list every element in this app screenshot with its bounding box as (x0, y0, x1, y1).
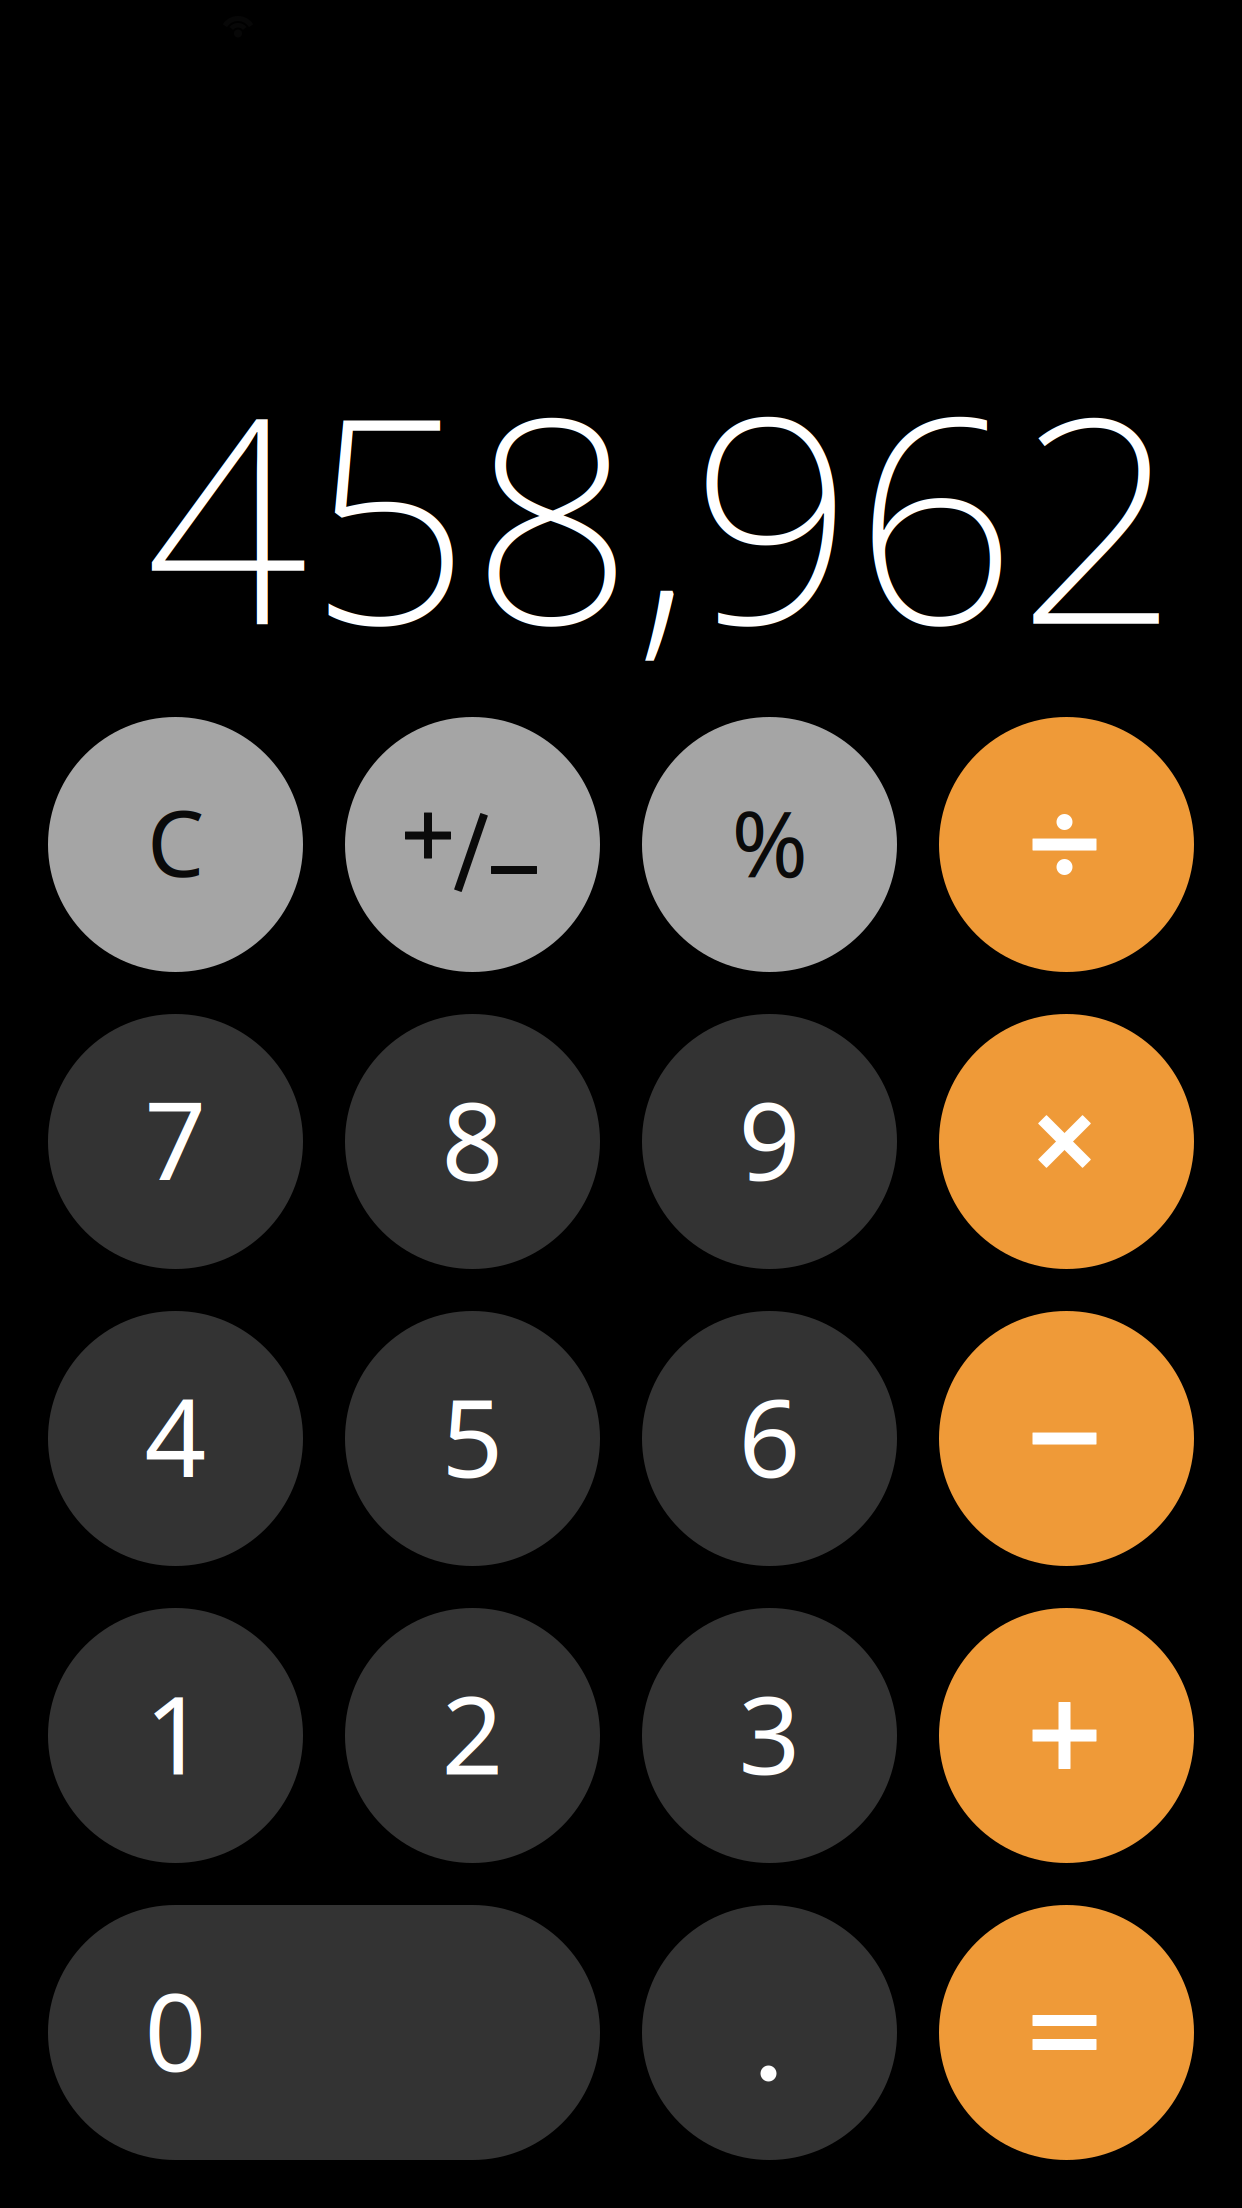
button[interactable]: Toggle sign (345, 717, 600, 972)
button[interactable]: 4 (48, 1311, 303, 1566)
staticText: C (147, 781, 204, 902)
button[interactable]: 3 (642, 1608, 897, 1863)
button[interactable]: Multiply (939, 1014, 1194, 1269)
button[interactable]: 8 (345, 1014, 600, 1269)
staticText: 6 (738, 1364, 800, 1507)
button[interactable]: Percent (642, 717, 897, 972)
button[interactable]: 7 (48, 1014, 303, 1269)
button[interactable]: 9 (642, 1014, 897, 1269)
staticText: 7 (144, 1067, 206, 1210)
button[interactable]: Decimal point (642, 1905, 897, 2160)
button[interactable]: Subtract (939, 1311, 1194, 1566)
staticText: 0 (144, 1958, 206, 2101)
button[interactable]: 6 (642, 1311, 897, 1566)
button[interactable]: 1 (48, 1608, 303, 1863)
button[interactable]: Clear (48, 717, 303, 972)
button[interactable]: Divide (939, 717, 1194, 972)
button[interactable]: 2 (345, 1608, 600, 1863)
staticText: 5 (441, 1364, 503, 1507)
staticText: 9 (738, 1067, 800, 1210)
staticText: 2 (441, 1661, 503, 1804)
staticText: 458,962 (145, 323, 1180, 702)
staticText: % (731, 780, 807, 903)
button[interactable]: 0 (48, 1905, 600, 2160)
staticText: 3 (738, 1661, 800, 1804)
staticText: 1 (144, 1661, 206, 1804)
button[interactable]: 5 (345, 1311, 600, 1566)
staticText: 4 (144, 1364, 206, 1507)
staticText: 8 (441, 1067, 503, 1210)
button[interactable]: Add (939, 1608, 1194, 1863)
button[interactable]: Equals (939, 1905, 1194, 2160)
